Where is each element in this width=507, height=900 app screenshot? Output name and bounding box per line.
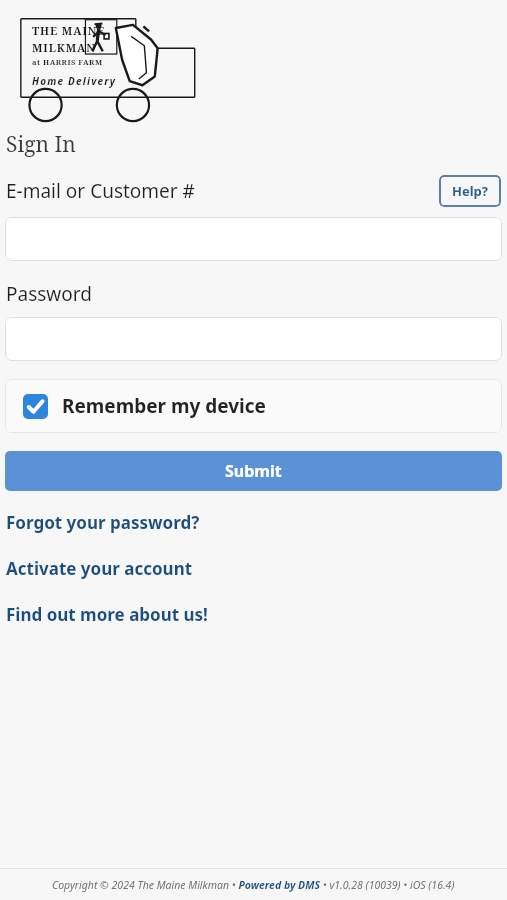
staticText: Forgot your password?: [6, 511, 200, 534]
staticText: Activate your account: [6, 557, 193, 580]
staticText: MILKMAN: [32, 40, 96, 55]
staticText: Home Delivery: [32, 74, 117, 88]
button[interactable]: Submit: [5, 451, 502, 491]
staticText: Password: [6, 281, 92, 307]
staticText: at HARRIS FARM: [32, 57, 103, 67]
button[interactable]: [5, 317, 502, 361]
button[interactable]: Activate your account: [0, 557, 507, 580]
staticText: Copyright © 2024 The Maine Milkman • Pow…: [52, 878, 455, 892]
staticText: Find out more about us!: [6, 603, 208, 626]
button[interactable]: Find out more about us!: [0, 603, 507, 626]
button[interactable]: Remember my device: [5, 379, 502, 433]
staticText: Help?: [452, 182, 488, 200]
button[interactable]: [5, 217, 502, 261]
staticText: Submit: [225, 460, 282, 482]
staticText: Remember my device: [62, 393, 266, 419]
staticText: THE MAINE: [32, 23, 106, 38]
button[interactable]: Help?: [439, 175, 501, 207]
staticText: E-mail or Customer #: [6, 178, 195, 204]
staticText: Sign In: [6, 130, 76, 159]
button[interactable]: Forgot your password?: [0, 511, 507, 534]
